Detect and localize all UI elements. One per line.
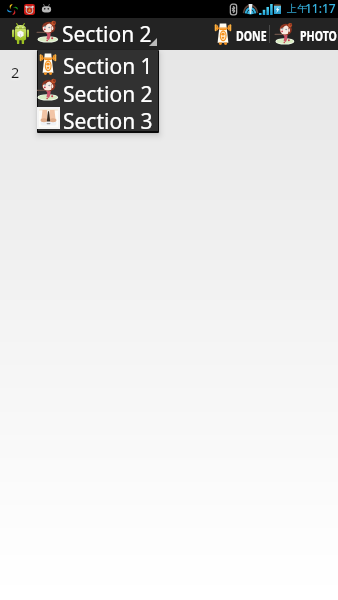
button[interactable]: PHOTO — [272, 18, 338, 50]
staticText: 2 — [11, 62, 20, 82]
staticText: PHOTO — [300, 26, 337, 45]
button[interactable]: Section 2 — [34, 18, 160, 50]
staticText: 上午 — [287, 2, 307, 15]
staticText: DONE — [236, 26, 267, 45]
button[interactable]: DONE — [208, 18, 270, 50]
staticText: 11:17 — [305, 0, 336, 16]
button[interactable]: Section 2 — [37, 78, 159, 106]
button[interactable]: Section 3 — [37, 105, 159, 133]
staticText: Section 2 — [62, 20, 152, 49]
staticText: Section 1 — [63, 52, 153, 80]
button[interactable]: Section 1 — [37, 50, 159, 78]
staticText: Section 2 — [63, 80, 153, 108]
staticText: Section 3 — [63, 107, 153, 133]
other: App icon — [12, 23, 29, 45]
